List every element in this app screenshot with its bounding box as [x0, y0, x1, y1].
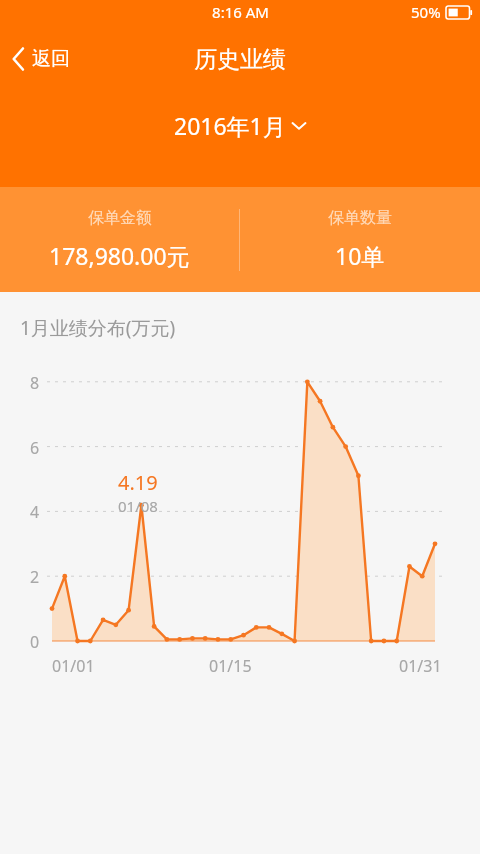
staticText: 1月业绩分布(万元): [20, 315, 176, 341]
staticText: 历史业绩: [194, 45, 286, 74]
button[interactable]: 2016年1月: [160, 104, 321, 147]
staticText: 8:16 AM: [212, 2, 269, 22]
staticText: 01/15: [209, 655, 252, 677]
staticText: 保单金额: [88, 208, 152, 228]
staticText: 4.19: [118, 469, 158, 496]
staticText: 01/01: [52, 655, 95, 677]
button[interactable]: 保单数量: [240, 187, 480, 292]
staticText: 50%: [411, 2, 441, 22]
staticText: 10单: [335, 240, 385, 271]
staticText: 01/08: [118, 496, 158, 516]
button[interactable]: 返回: [0, 39, 84, 79]
staticText: 2: [30, 566, 40, 588]
staticText: 0: [30, 631, 40, 653]
staticText: 178,980.00元: [49, 240, 190, 271]
staticText: 4: [30, 501, 40, 523]
staticText: 2016年1月: [174, 110, 286, 141]
staticText: 8: [30, 372, 40, 394]
staticText: 返回: [32, 47, 70, 71]
staticText: 01/31: [399, 655, 442, 677]
button[interactable]: 保单金额: [0, 187, 239, 292]
staticText: 6: [30, 437, 40, 459]
staticText: 保单数量: [328, 208, 392, 228]
